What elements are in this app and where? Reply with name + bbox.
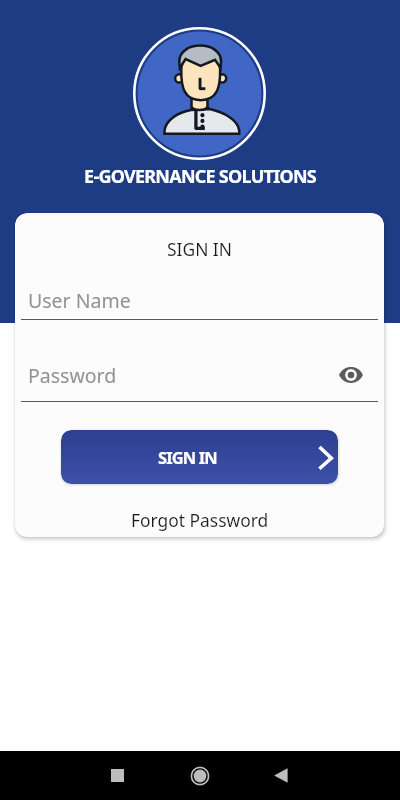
button[interactable]: Forgot Password xyxy=(119,505,281,535)
staticText: User Name xyxy=(28,287,131,314)
button[interactable]: SIGN IN xyxy=(61,430,338,484)
button[interactable]: User Name xyxy=(15,278,384,320)
staticText: E-GOVERNANCE SOLUTIONS xyxy=(0,164,400,189)
button[interactable]: Show password xyxy=(338,362,364,388)
staticText: Forgot Password xyxy=(131,508,269,532)
staticText: SIGN IN xyxy=(15,237,384,261)
button[interactable]: Recent apps xyxy=(93,751,141,799)
button[interactable]: Home xyxy=(176,752,224,800)
staticText: SIGN IN xyxy=(158,446,217,468)
button[interactable]: Back xyxy=(257,751,305,799)
staticText: Password xyxy=(28,362,117,389)
button[interactable]: Password xyxy=(15,360,384,402)
